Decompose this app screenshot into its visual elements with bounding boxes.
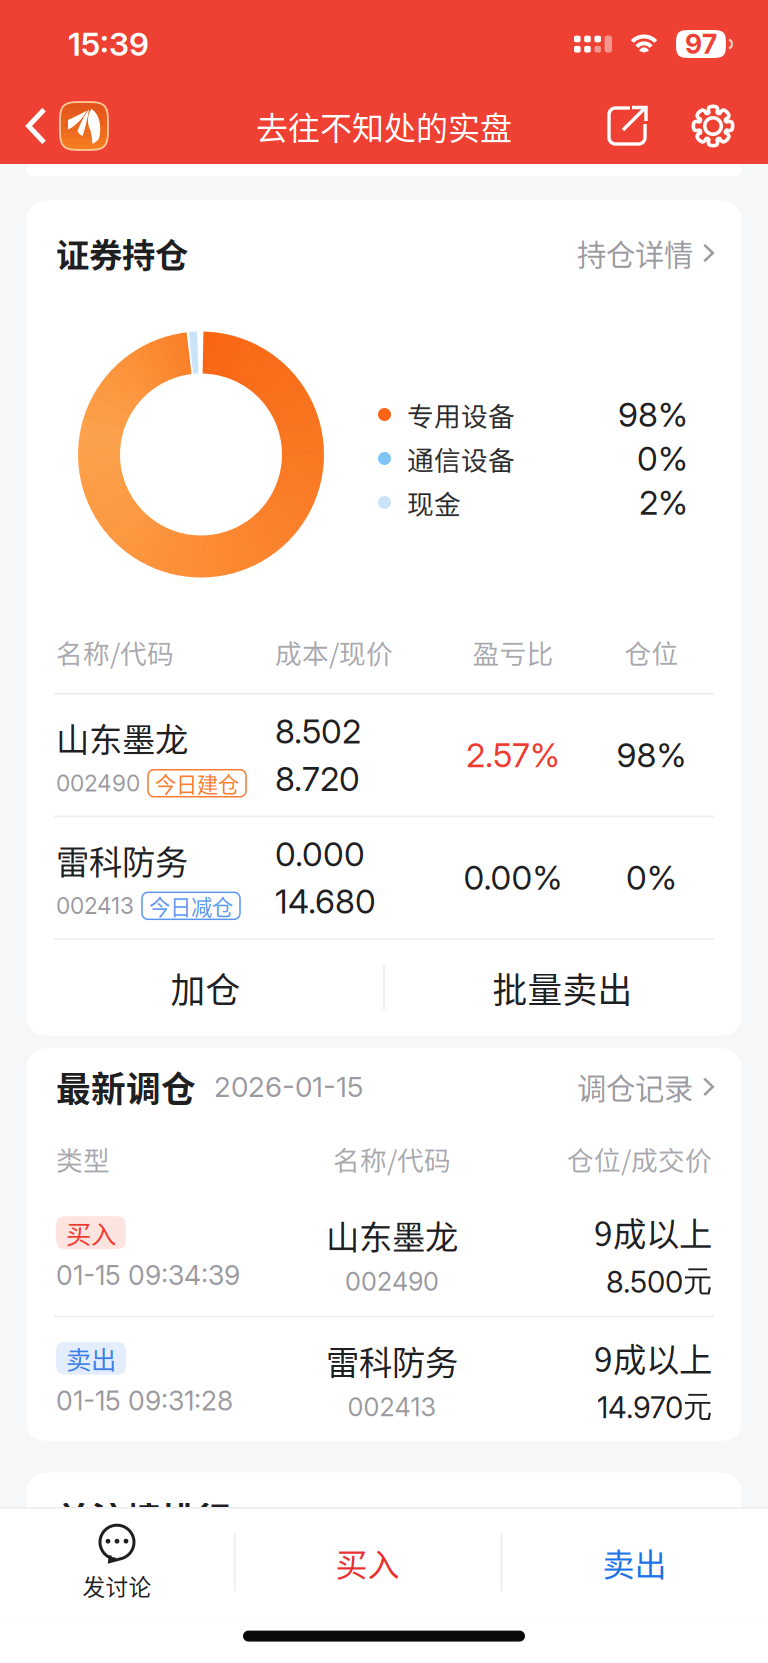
- staticText: 002413: [56, 892, 134, 919]
- button[interactable]: 证券持仓: [26, 200, 742, 306]
- staticText: 002490: [56, 769, 140, 797]
- staticText: 002413: [347, 1392, 436, 1422]
- staticText: 专用设备: [407, 395, 515, 434]
- staticText: 卖出: [602, 1539, 666, 1586]
- staticText: 0%: [637, 438, 688, 479]
- staticText: 今日建仓: [155, 768, 239, 799]
- button[interactable]: 最新调仓: [26, 1048, 742, 1126]
- staticText: 持仓详情: [577, 232, 693, 274]
- button[interactable]: 返回: [0, 88, 119, 164]
- staticText: 仓位: [624, 633, 678, 671]
- staticText: 调仓记录: [577, 1066, 693, 1108]
- staticText: 15:39: [68, 25, 149, 63]
- staticText: 批量卖出: [492, 963, 632, 1013]
- button[interactable]: 设置: [680, 93, 746, 159]
- staticText: 名称/代码: [56, 633, 174, 671]
- staticText: 今日减仓: [149, 890, 233, 921]
- staticText: 9成以上: [594, 1208, 712, 1256]
- staticText: 0.000: [275, 834, 365, 874]
- staticText: 现金: [407, 483, 461, 522]
- staticText: 雷科防务: [56, 836, 188, 884]
- staticText: 8.502: [275, 711, 361, 752]
- staticText: 2026-01-15: [214, 1070, 363, 1104]
- staticText: 买入: [66, 1214, 116, 1251]
- button[interactable]: 卖出: [501, 1509, 768, 1617]
- staticText: 98%: [616, 735, 686, 775]
- staticText: 01-15 09:31:28: [56, 1385, 233, 1417]
- staticText: 加仓: [170, 963, 240, 1013]
- button[interactable]: 加仓: [27, 940, 384, 1036]
- staticText: 0.00%: [463, 857, 562, 898]
- staticText: 002490: [345, 1266, 439, 1297]
- staticText: 名称/代码: [333, 1139, 451, 1178]
- staticText: 盈亏比: [472, 633, 553, 671]
- staticText: 山东墨龙: [56, 713, 188, 762]
- staticText: 最新调仓: [56, 1062, 196, 1112]
- button[interactable]: 分享: [594, 93, 660, 159]
- staticText: 通信设备: [407, 439, 515, 478]
- staticText: 97: [685, 28, 717, 60]
- staticText: 14.680: [275, 881, 376, 921]
- staticText: 卖出: [66, 1340, 116, 1377]
- staticText: 0%: [626, 857, 677, 898]
- button[interactable]: 买入: [234, 1509, 501, 1617]
- staticText: 8.500元: [606, 1263, 712, 1300]
- staticText: 2%: [639, 482, 688, 523]
- staticText: 去往不知处的实盘: [256, 103, 512, 149]
- staticText: 98%: [618, 394, 688, 435]
- button[interactable]: 发讨论: [0, 1509, 234, 1617]
- staticText: 发讨论: [82, 1569, 151, 1602]
- staticText: 买入: [335, 1539, 399, 1586]
- staticText: 8.720: [275, 759, 360, 799]
- staticText: 类型: [56, 1139, 110, 1178]
- staticText: 9成以上: [594, 1333, 712, 1382]
- staticText: 2.57%: [466, 735, 560, 775]
- staticText: 关注榜排行: [56, 1492, 231, 1542]
- staticText: 14.970元: [597, 1389, 712, 1426]
- staticText: 仓位/成交价: [567, 1139, 712, 1178]
- button[interactable]: 批量卖出: [384, 940, 741, 1036]
- staticText: 雷科防务: [326, 1336, 458, 1385]
- staticText: 成本/现价: [275, 633, 393, 671]
- staticText: 证券持仓: [56, 229, 188, 277]
- staticText: 01-15 09:34:39: [56, 1259, 240, 1291]
- staticText: 山东墨龙: [326, 1211, 458, 1259]
